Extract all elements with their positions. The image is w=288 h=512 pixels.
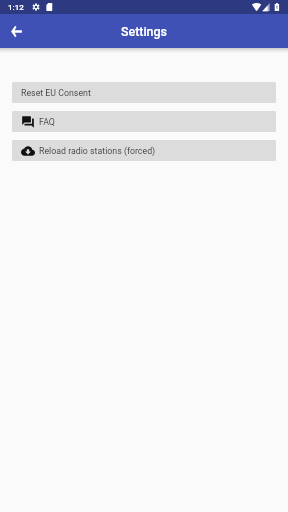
button[interactable]: Reload radio stations (forced) [12, 140, 276, 161]
staticText: Settings [121, 24, 167, 39]
staticText: Reset EU Consent [21, 88, 91, 98]
staticText: Reload radio stations (forced) [39, 146, 156, 156]
button[interactable]: FAQ [12, 111, 276, 132]
button[interactable]: Back [6, 21, 27, 42]
staticText: FAQ [39, 117, 55, 127]
staticText: 1:12 [8, 3, 24, 12]
button[interactable]: Reset EU Consent [12, 82, 276, 103]
